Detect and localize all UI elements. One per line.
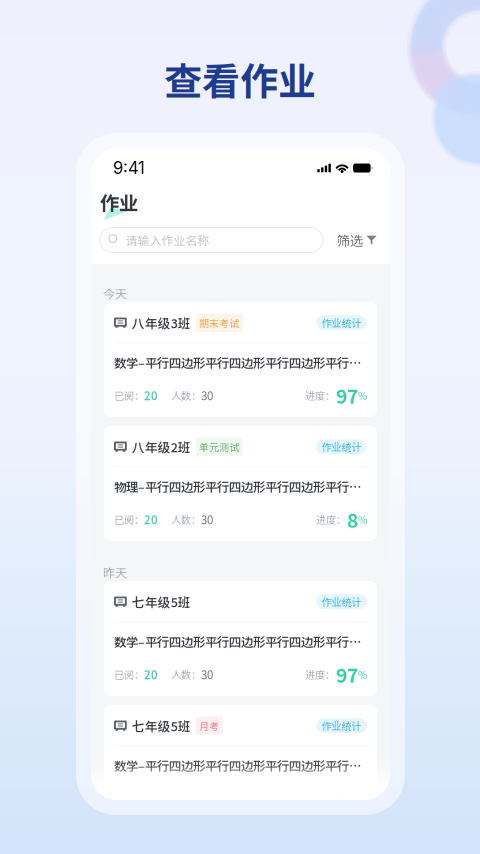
- staticText: 物理–平行四边形平行四边形平行四边形平行四边…: [114, 477, 367, 495]
- button[interactable]: 八年级3班: [104, 302, 377, 417]
- staticText: 进度：: [316, 512, 346, 527]
- staticText: 已阅：: [114, 791, 144, 806]
- staticText: 30: [201, 511, 213, 528]
- staticText: 97: [336, 660, 358, 688]
- staticText: 9:41: [113, 158, 145, 178]
- staticText: 已阅：: [114, 388, 144, 403]
- staticText: 20: [144, 511, 158, 528]
- staticText: 20: [144, 666, 158, 683]
- staticText: 已阅：: [114, 667, 144, 682]
- staticText: 期末考试: [199, 316, 239, 330]
- staticText: 30: [201, 790, 213, 807]
- staticText: 月考: [199, 719, 219, 733]
- button[interactable]: 筛选: [335, 226, 379, 254]
- staticText: 作业统计: [321, 315, 361, 330]
- staticText: 数学–平行四边形平行四边形平行四边形平行四边…: [114, 756, 367, 774]
- staticText: 97: [336, 381, 358, 409]
- staticText: %: [358, 667, 367, 682]
- button[interactable]: 七年级5班: [104, 705, 377, 820]
- staticText: 8: [347, 505, 358, 533]
- staticText: 人数：: [171, 388, 201, 403]
- button[interactable]: 八年级2班: [104, 426, 377, 541]
- staticText: 查看作业: [164, 51, 316, 106]
- staticText: %: [358, 388, 367, 403]
- staticText: 八年级3班: [132, 314, 191, 332]
- staticText: 已阅：: [114, 512, 144, 527]
- staticText: 今天: [103, 285, 127, 302]
- staticText: 人数：: [171, 667, 201, 682]
- staticText: 七年级5班: [132, 593, 191, 611]
- staticText: 请输入作业名称: [126, 231, 210, 249]
- staticText: 作业: [100, 188, 138, 216]
- staticText: 进度：: [305, 667, 335, 682]
- button[interactable]: 七年级5班: [104, 581, 377, 696]
- staticText: 数学–平行四边形平行四边形平行四边形平行四边…: [114, 632, 367, 650]
- staticText: %: [358, 512, 367, 527]
- staticText: 单元测试: [199, 440, 239, 454]
- staticText: 97: [336, 784, 358, 812]
- staticText: 进度：: [305, 388, 335, 403]
- staticText: 20: [144, 790, 158, 807]
- staticText: 筛选: [337, 230, 363, 250]
- staticText: %: [358, 791, 367, 806]
- staticText: 人数：: [171, 791, 201, 806]
- staticText: 数学–平行四边形平行四边形平行四边形平行四边…: [114, 353, 367, 371]
- staticText: 人数：: [171, 512, 201, 527]
- staticText: 昨天: [103, 564, 127, 581]
- staticText: 作业统计: [321, 718, 361, 733]
- staticText: 八年级2班: [132, 438, 191, 456]
- staticText: 作业统计: [321, 439, 361, 454]
- staticText: 作业统计: [321, 594, 361, 609]
- staticText: 30: [201, 387, 213, 404]
- button[interactable]: 请输入作业名称: [100, 227, 323, 252]
- staticText: 七年级5班: [132, 717, 191, 735]
- staticText: 30: [201, 666, 213, 683]
- staticText: 进度：: [305, 791, 335, 806]
- staticText: 20: [144, 387, 158, 404]
